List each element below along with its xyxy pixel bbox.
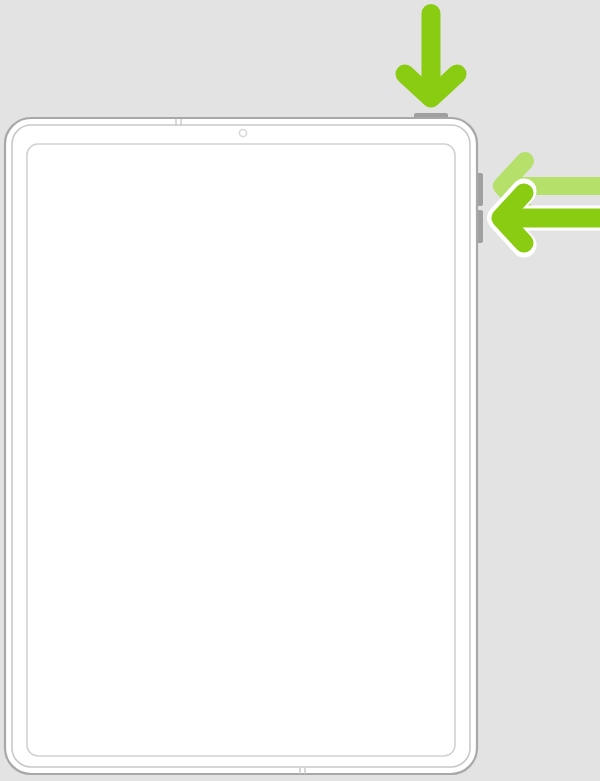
other: Diagram: press top button and volume but… — [0, 0, 600, 781]
